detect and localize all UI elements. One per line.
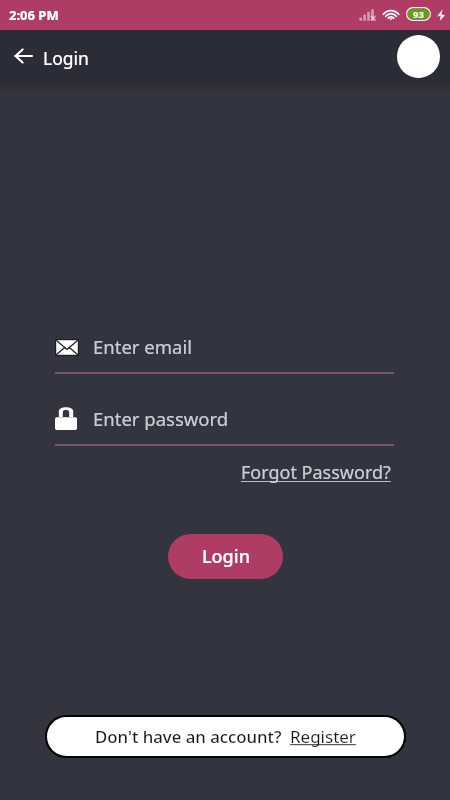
button[interactable]: Enter email xyxy=(55,331,394,374)
button[interactable]: Forgot Password? xyxy=(241,460,391,485)
staticText: Login xyxy=(202,544,250,569)
button[interactable]: Enter password xyxy=(55,403,394,446)
staticText: 93 xyxy=(413,8,424,21)
button[interactable]: Back xyxy=(6,39,40,73)
staticText: Enter email xyxy=(93,334,192,359)
staticText: Forgot Password? xyxy=(241,460,391,485)
button[interactable]: Don't have an account? xyxy=(47,717,404,756)
staticText: 2:06 PM xyxy=(9,6,59,24)
button[interactable]: Login xyxy=(168,534,283,579)
staticText: Login xyxy=(43,46,89,70)
staticText: Don't have an account? xyxy=(95,725,282,748)
staticText: Register xyxy=(290,725,356,748)
button[interactable]: Profile xyxy=(397,35,440,78)
staticText: Enter password xyxy=(93,406,229,431)
